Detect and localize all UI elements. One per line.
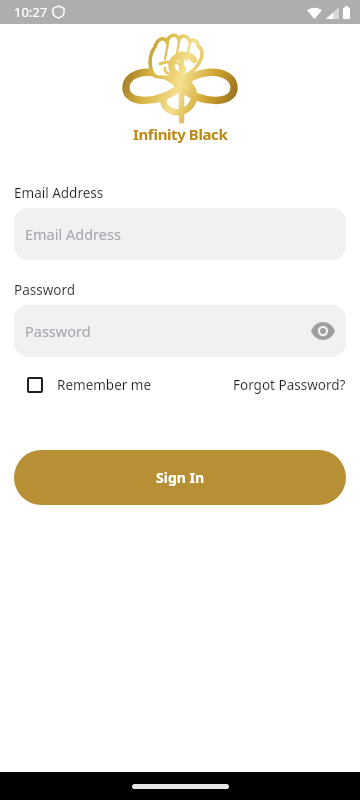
staticText: Infinity Black bbox=[133, 124, 228, 144]
staticText: Remember me bbox=[57, 376, 152, 394]
staticText: Email Address bbox=[14, 184, 104, 202]
staticText: Email Address bbox=[25, 224, 121, 244]
staticText: Password bbox=[14, 281, 76, 299]
staticText: 10:27 bbox=[14, 3, 48, 21]
staticText: Sign In bbox=[156, 468, 205, 487]
staticText: Forgot Password? bbox=[233, 376, 346, 394]
staticText: Password bbox=[25, 321, 91, 341]
